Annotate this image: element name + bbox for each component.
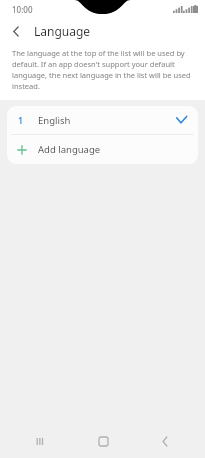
button[interactable]: Back bbox=[4, 19, 28, 43]
staticText: Language bbox=[34, 23, 91, 39]
staticText: The language at the top of the list will… bbox=[12, 48, 191, 91]
staticText: Add language bbox=[38, 143, 101, 156]
staticText: 10:00 bbox=[12, 4, 33, 15]
staticText: 1 bbox=[18, 114, 24, 126]
staticText: English bbox=[38, 114, 71, 127]
button[interactable]: 1 bbox=[7, 106, 198, 134]
button[interactable]: Back bbox=[143, 424, 187, 458]
button[interactable]: Recent apps bbox=[18, 424, 62, 458]
button[interactable]: Home bbox=[81, 424, 125, 458]
button[interactable]: Add language bbox=[7, 135, 198, 164]
